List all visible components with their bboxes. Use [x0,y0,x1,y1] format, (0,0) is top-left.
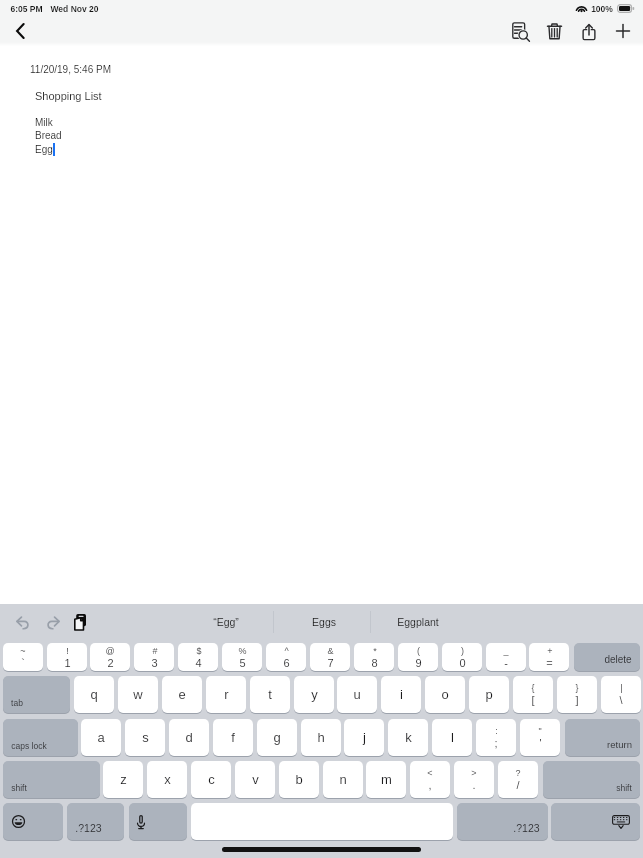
button[interactable]: > [454,761,494,798]
button[interactable]: Share [576,18,602,44]
button[interactable]: shift [543,761,640,798]
button[interactable]: shift [3,761,100,798]
button[interactable]: _ [486,643,526,671]
staticText: .?123 [513,822,540,834]
button[interactable]: tab [3,676,70,713]
staticText: x [164,772,171,787]
button[interactable]: t [250,676,290,713]
staticText: Shopping List [35,90,102,102]
button[interactable]: g [257,719,297,756]
button[interactable]: ! [47,643,87,671]
staticText: > [471,768,477,778]
button[interactable]: l [432,719,472,756]
button[interactable]: d [169,719,209,756]
button[interactable]: } [557,676,597,713]
staticText: ( [417,646,420,656]
button[interactable]: | [601,676,641,713]
button[interactable]: Eggs [276,604,371,640]
staticText: z [120,772,127,787]
button[interactable]: & [310,643,350,671]
button[interactable]: s [125,719,165,756]
button[interactable]: w [118,676,158,713]
button[interactable]: v [235,761,275,798]
button[interactable]: .?123 [67,803,124,840]
button[interactable]: r [206,676,246,713]
button[interactable]: < [410,761,450,798]
staticText: ; [494,737,498,749]
button[interactable]: ) [442,643,482,671]
staticText: ? [515,768,521,778]
staticText: e [178,687,186,702]
button[interactable]: f [213,719,253,756]
button[interactable]: Delete [541,18,567,44]
button[interactable]: y [294,676,334,713]
button[interactable]: Paste [66,609,92,635]
staticText: . [472,779,476,791]
button[interactable]: o [425,676,465,713]
button[interactable]: @ [90,643,130,671]
button[interactable]: m [366,761,406,798]
button[interactable]: * [354,643,394,671]
button[interactable]: : [476,719,516,756]
button[interactable]: z [103,761,143,798]
button[interactable]: Hide keyboard [551,803,640,840]
staticText: % [238,646,247,656]
button[interactable]: Emoji [3,803,63,840]
button[interactable]: q [74,676,114,713]
button[interactable]: n [323,761,363,798]
button[interactable]: Dictate [129,803,187,840]
staticText: 0 [459,657,466,669]
button[interactable]: { [513,676,553,713]
staticText: Eggplant [397,616,439,628]
button[interactable]: $ [178,643,218,671]
button[interactable]: + [529,643,569,671]
button[interactable]: ^ [266,643,306,671]
staticText: } [575,683,579,693]
button[interactable]: j [344,719,384,756]
button[interactable]: Undo [9,609,35,635]
button[interactable]: Redo [40,609,66,635]
button[interactable]: i [381,676,421,713]
staticText: Wed Nov 20 [50,4,99,13]
staticText: tab [11,698,23,707]
button[interactable]: % [222,643,262,671]
staticText: p [485,687,493,702]
button[interactable]: ( [398,643,438,671]
staticText: 6:05 PM [10,4,43,13]
staticText: 6 [283,657,290,669]
button[interactable]: e [162,676,202,713]
button[interactable]: caps lock [3,719,78,756]
button[interactable]: h [301,719,341,756]
button[interactable]: New note [610,18,636,44]
button[interactable]: Search in note [506,18,533,44]
staticText: ) [461,646,464,656]
button[interactable]: x [147,761,187,798]
button[interactable]: a [81,719,121,756]
staticText: 3 [151,657,158,669]
button[interactable]: delete [574,643,640,671]
button[interactable]: # [134,643,174,671]
staticText: r [224,687,229,702]
staticText: c [208,772,215,787]
button[interactable]: Eggplant [372,604,464,640]
button[interactable]: c [191,761,231,798]
button[interactable]: ? [498,761,538,798]
button[interactable]: u [337,676,377,713]
button[interactable]: p [469,676,509,713]
button[interactable]: b [279,761,319,798]
button[interactable]: “Egg” [176,604,276,640]
button[interactable]: return [565,719,640,756]
button[interactable]: k [388,719,428,756]
staticText: caps lock [11,741,47,750]
staticText: o [441,687,449,702]
staticText: shift [616,783,632,792]
button[interactable]: Back [6,17,34,45]
staticText: * [373,646,377,656]
button[interactable]: " [520,719,560,756]
button[interactable]: .?123 [457,803,548,840]
staticText: n [339,772,347,787]
staticText: 11/20/19, 5:46 PM [30,64,111,75]
button[interactable]: ~ [3,643,43,671]
staticText: 4 [195,657,202,669]
